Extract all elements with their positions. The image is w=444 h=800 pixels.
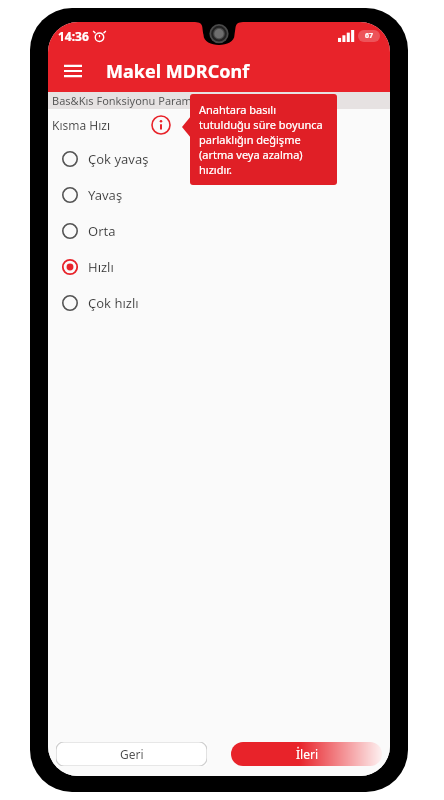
staticText: Hızlı <box>88 258 114 276</box>
staticText: Bas&Kıs Fonksiyonu Parametreleri <box>52 93 230 108</box>
staticText: Kısma Hızı <box>52 117 111 133</box>
button[interactable]: Yavaş <box>48 177 390 213</box>
staticText: Orta <box>88 222 116 240</box>
staticText: Yavaş <box>88 186 123 204</box>
staticText: Geri <box>120 746 144 762</box>
button[interactable]: İleri <box>231 742 382 766</box>
button[interactable]: Information about dimming speed <box>148 112 174 138</box>
staticText: Makel MDRConf <box>106 59 250 84</box>
staticText: 67 <box>365 31 374 41</box>
staticText: Çok hızlı <box>88 294 139 312</box>
staticText: İleri <box>296 746 318 762</box>
button[interactable]: Çok yavaş <box>48 141 390 177</box>
button[interactable]: Geri <box>56 742 207 766</box>
button[interactable]: Çok hızlı <box>48 285 390 321</box>
button[interactable]: Orta <box>48 213 390 249</box>
staticText: Çok yavaş <box>88 150 149 168</box>
button[interactable]: Open navigation menu <box>54 52 92 90</box>
staticText: Anahtara basılı tutulduğu süre boyunca p… <box>199 102 328 177</box>
staticText: 14:36 <box>58 28 89 44</box>
button[interactable]: Hızlı <box>48 249 390 285</box>
